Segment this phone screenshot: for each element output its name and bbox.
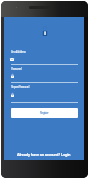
staticText: Register	[40, 111, 49, 115]
staticText: Password	[11, 67, 22, 71]
staticText: Repeat Password	[11, 85, 30, 89]
staticText: Already have an account?	[17, 152, 61, 157]
button[interactable]: Register	[11, 108, 78, 118]
staticText: Login	[61, 152, 71, 157]
staticText: Email Address	[11, 50, 26, 54]
button[interactable]: Already have an account?	[4, 151, 84, 158]
